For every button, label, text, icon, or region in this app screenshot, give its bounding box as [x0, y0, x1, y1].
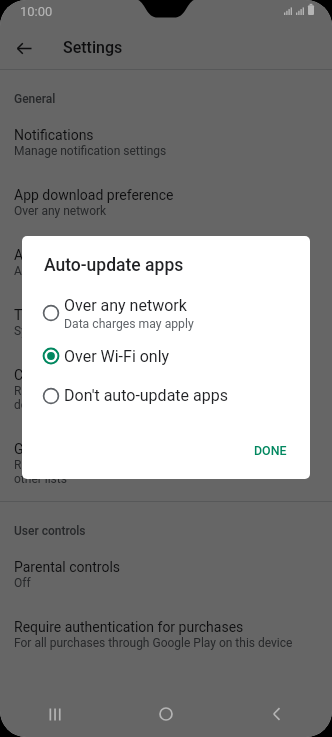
button[interactable]: Auto-update apps	[0, 233, 332, 293]
staticText: Require authentication for purchases	[14, 619, 244, 635]
staticText: General	[14, 92, 56, 106]
staticText: Data charges may apply	[64, 317, 194, 331]
staticText: For all purchases through Google Play on…	[14, 636, 293, 650]
button[interactable]: Notifications	[0, 113, 332, 173]
button[interactable]: Back	[10, 34, 38, 62]
staticText: Ask me every time	[14, 264, 112, 278]
button[interactable]: Recent apps	[27, 693, 83, 735]
staticText: Parental controls	[14, 559, 121, 575]
button[interactable]: Over any network	[22, 290, 310, 336]
button[interactable]: Home	[138, 693, 194, 735]
button[interactable]: DONE	[245, 437, 296, 464]
button[interactable]: Over Wi-Fi only	[22, 336, 310, 376]
staticText: Theme	[14, 307, 58, 323]
button[interactable]: Theme	[0, 293, 332, 353]
staticText: Clear local search history	[14, 367, 171, 383]
button[interactable]: Google Play activity history	[0, 427, 332, 501]
staticText: Remove history in your wishlist, the Bet…	[14, 458, 300, 486]
button[interactable]: Parental controls	[0, 545, 332, 605]
staticText: Remove searches you have performed on th…	[14, 384, 257, 412]
staticText: Auto-update apps	[44, 255, 184, 276]
staticText: DONE	[254, 443, 287, 458]
staticText: User controls	[14, 524, 86, 538]
staticText: 10:00	[20, 4, 53, 19]
staticText: App download preference	[14, 187, 174, 203]
staticText: Settings	[63, 38, 123, 57]
staticText: Off	[14, 576, 31, 590]
button[interactable]: Require authentication for purchases	[0, 605, 332, 665]
staticText: Auto-update apps	[14, 247, 125, 263]
staticText: Notifications	[14, 127, 94, 143]
staticText: System default	[14, 324, 95, 338]
staticText: Manage notification settings	[14, 144, 167, 158]
staticText: Over Wi-Fi only	[64, 347, 170, 366]
staticText: Over any network	[14, 204, 107, 218]
staticText: Over any network	[64, 296, 187, 315]
button[interactable]: Clear local search history	[0, 353, 332, 427]
button[interactable]: Back	[249, 693, 305, 735]
staticText: Don't auto-update apps	[64, 386, 228, 405]
staticText: Google Play activity history	[14, 441, 182, 457]
button[interactable]: App download preference	[0, 173, 332, 233]
button[interactable]: Don't auto-update apps	[22, 376, 310, 415]
